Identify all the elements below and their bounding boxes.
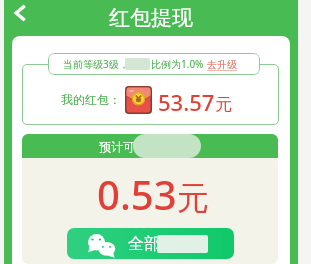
staticText: 0.53 (97, 167, 177, 221)
staticText: 当前等级3级， (63, 57, 129, 71)
button[interactable]: 当前等级3级， (48, 53, 260, 75)
staticText: 我的红包： (61, 92, 121, 107)
button[interactable]: 全部 (67, 228, 234, 259)
staticText: 元 (215, 94, 232, 115)
staticText: 53.57 (158, 87, 215, 117)
staticText: 元 (177, 178, 209, 218)
staticText: 比例为1.0% (151, 57, 204, 71)
staticText: 去升级 (207, 58, 237, 71)
staticText: 红包提现 (109, 5, 193, 31)
button[interactable]: Back (5, 0, 39, 30)
staticText: 全部 (128, 234, 160, 254)
staticText: 预计可 (99, 139, 135, 154)
